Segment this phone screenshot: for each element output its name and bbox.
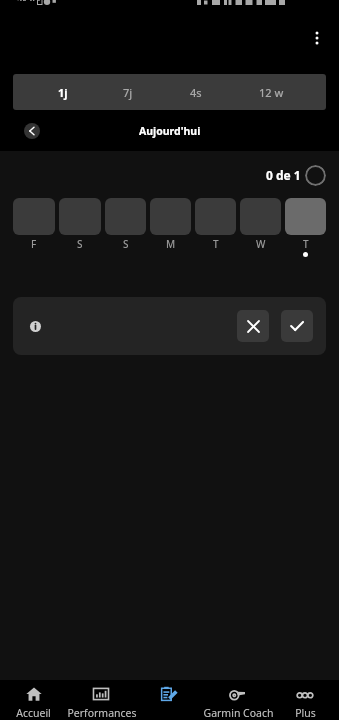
staticText: W [256,237,266,251]
button[interactable]: Progress [305,165,326,186]
button[interactable]: 7j [102,74,154,110]
button[interactable]: 1j [37,74,89,110]
button[interactable]: Accueil [0,680,67,720]
other: Training plan [161,686,177,702]
button[interactable]: Dismiss [237,310,269,342]
button[interactable]: Garmin Coach [203,680,271,720]
button[interactable]: T [195,198,236,251]
staticText: S [123,237,129,251]
button[interactable]: Information [25,316,45,336]
staticText: 0 de 1 [266,167,301,183]
staticText: 1j [58,85,68,100]
button[interactable]: F [13,198,55,251]
staticText: 7j [123,85,133,100]
staticText: T [213,237,219,251]
button[interactable]: T [285,198,326,257]
staticText: M [166,237,176,251]
button[interactable]: Plus [271,680,339,720]
button[interactable]: More options [303,24,331,52]
staticText: 4s [190,85,202,100]
button[interactable]: 12 w [245,74,297,110]
staticText: S [77,237,83,251]
button[interactable]: M [150,198,191,251]
staticText: 12 w [259,85,284,100]
button[interactable]: Information [13,297,326,355]
staticText: Performances [67,706,135,720]
staticText: Plus [295,706,316,720]
staticText: Garmin Coach [203,706,271,720]
staticText: Aujourd'hui [139,124,201,138]
button[interactable]: S [59,198,101,251]
button[interactable]: Performances [67,680,135,720]
staticText: 21:07 [17,0,41,1]
staticText: T [303,237,309,251]
button[interactable]: Accept [281,310,313,342]
button[interactable]: Back [16,115,48,147]
button[interactable]: 4s [170,74,222,110]
button[interactable]: S [105,198,146,251]
staticText: Accueil [16,706,51,720]
button[interactable]: W [240,198,281,251]
button[interactable]: Training plan [135,680,203,720]
staticText: F [31,237,37,251]
